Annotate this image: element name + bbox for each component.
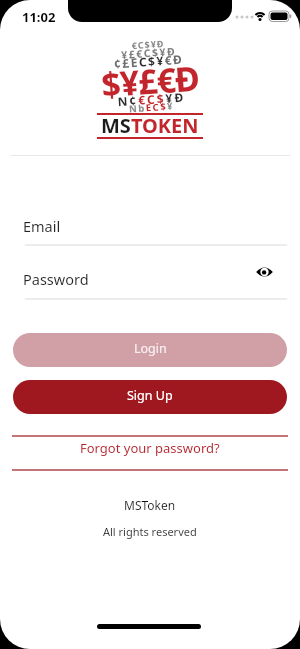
staticText: NbEC$¥ xyxy=(129,99,175,115)
staticText: Login xyxy=(134,340,167,357)
staticText: ¢£EC$¥€Đ xyxy=(113,51,184,71)
staticText: All rights reserved xyxy=(103,524,197,539)
button[interactable]: Login xyxy=(13,333,287,367)
button[interactable] xyxy=(13,264,287,300)
staticText: Sign Up xyxy=(127,387,173,404)
staticText: MSToken xyxy=(124,497,176,513)
staticText: €C$¥Đ xyxy=(131,37,165,51)
staticText: $¥£€Đ xyxy=(100,55,201,107)
staticText: Password xyxy=(23,269,89,289)
button[interactable]: Sign Up xyxy=(13,380,287,414)
staticText: Forgot your password? xyxy=(80,439,220,457)
staticText: ¥£€C$¥Đ xyxy=(121,44,177,62)
staticText: Email xyxy=(23,216,61,236)
staticText: MSTOKEN xyxy=(101,112,199,139)
button[interactable] xyxy=(13,212,287,246)
button[interactable] xyxy=(255,265,275,279)
staticText: N¢€C$¥Đ xyxy=(117,89,186,109)
button[interactable]: Forgot your password? xyxy=(80,439,220,457)
staticText: 11:02 xyxy=(22,8,56,26)
